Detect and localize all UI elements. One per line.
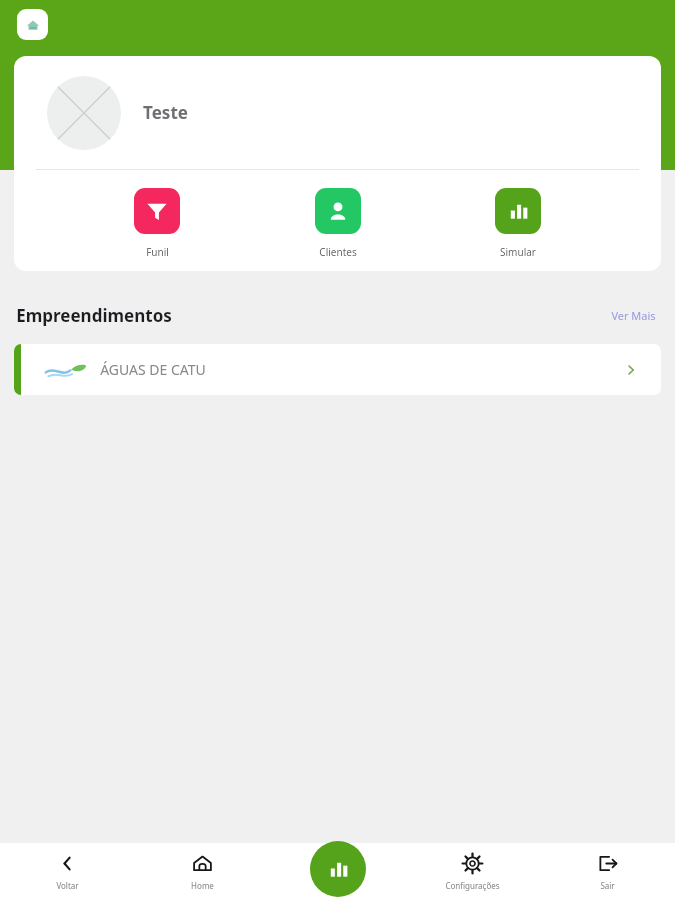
staticText: Funil [146, 245, 169, 259]
button[interactable]: Ver Mais [608, 306, 659, 325]
staticText: Simular [500, 245, 536, 259]
staticText: Configurações [445, 880, 500, 891]
staticText: Clientes [319, 245, 357, 259]
button[interactable]: Voltar [0, 843, 135, 900]
button[interactable]: App logo [17, 9, 48, 40]
button[interactable]: Home [135, 843, 270, 900]
button[interactable]: Simular [481, 186, 555, 261]
staticText: Teste [143, 101, 188, 124]
staticText: Home [191, 880, 214, 891]
staticText: ÁGUAS DE CATU [100, 360, 206, 379]
button[interactable]: Simular [310, 841, 366, 897]
button[interactable]: ÁGUAS DE CATU [14, 344, 661, 395]
button[interactable]: Configurações [405, 843, 540, 900]
staticText: Sair [600, 880, 615, 891]
staticText: Ver Mais [611, 308, 656, 323]
button[interactable]: Clientes [301, 186, 375, 261]
staticText: Voltar [56, 880, 79, 891]
staticText: Empreendimentos [16, 304, 172, 327]
button[interactable]: Funil [120, 186, 194, 261]
button[interactable]: Teste [14, 56, 661, 169]
button[interactable]: Sair [540, 843, 675, 900]
